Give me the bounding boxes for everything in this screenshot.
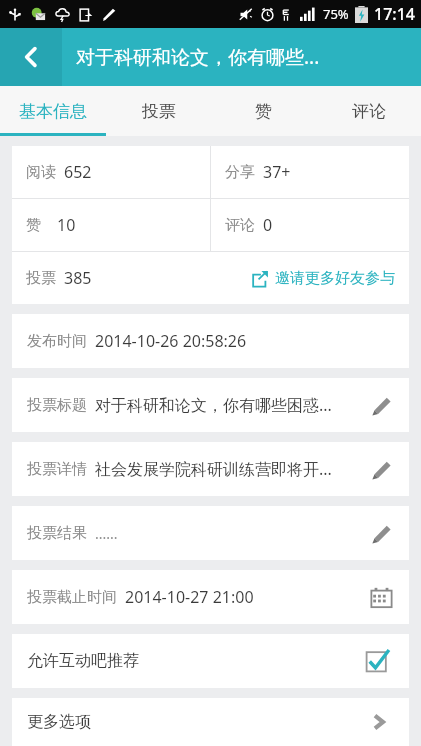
staticText: 投票 xyxy=(26,269,56,288)
staticText: 邀请更多好友参与 xyxy=(275,269,395,288)
staticText: 评论 xyxy=(352,101,386,122)
button[interactable]: 阅读 xyxy=(12,146,210,198)
staticText: 基本信息 xyxy=(19,101,87,122)
button[interactable]: 更多选项 xyxy=(13,699,408,745)
staticText: 更多选项 xyxy=(27,712,91,732)
button[interactable]: Pick date xyxy=(366,582,396,612)
button[interactable]: 投票 xyxy=(106,86,211,136)
staticText: 评论 xyxy=(225,216,255,235)
button[interactable]: Allow recommendation xyxy=(360,644,394,678)
staticText: 652 xyxy=(64,161,92,183)
button[interactable]: More options xyxy=(364,707,394,737)
staticText: 阅读 xyxy=(26,163,56,182)
staticText: 投票详情 xyxy=(27,460,87,479)
staticText: 75% xyxy=(323,5,349,23)
staticText: 0 xyxy=(263,214,273,236)
staticText: 对于科研和论文，你有哪些... xyxy=(76,44,320,70)
button[interactable]: 投票标题 xyxy=(13,379,408,431)
button[interactable]: Back xyxy=(0,28,62,86)
button[interactable]: 评论 xyxy=(211,199,409,251)
staticText: 投票截止时间 xyxy=(27,588,117,607)
staticText: 10 xyxy=(57,214,76,236)
button[interactable]: Edit xyxy=(366,390,396,420)
button[interactable]: 发布时间 xyxy=(13,315,408,367)
button[interactable]: 邀请更多好友参与 xyxy=(251,269,395,288)
button[interactable]: 投票截止时间 xyxy=(13,571,408,623)
button[interactable]: 赞 xyxy=(12,199,210,251)
staticText: 投票标题 xyxy=(27,396,87,415)
staticText: 分享 xyxy=(225,163,255,182)
staticText: 赞 xyxy=(255,101,272,122)
staticText: 投票结果 xyxy=(27,524,87,543)
staticText: 17:14 xyxy=(374,3,415,25)
staticText: 赞 xyxy=(26,216,41,235)
staticText: 2014-10-26 20:58:26 xyxy=(95,330,247,352)
staticText: 投票 xyxy=(142,101,176,122)
button[interactable]: 分享 xyxy=(211,146,409,198)
staticText: 允许互动吧推荐 xyxy=(27,651,139,671)
button[interactable]: 赞 xyxy=(211,86,316,136)
button[interactable]: 允许互动吧推荐 xyxy=(13,635,408,687)
staticText: 社会发展学院科研训练营即将开... xyxy=(95,458,332,480)
button[interactable]: 投票结果 xyxy=(13,507,408,559)
staticText: 385 xyxy=(64,267,92,289)
button[interactable]: 投票详情 xyxy=(13,443,408,495)
button[interactable]: Edit xyxy=(366,518,396,548)
staticText: 2014-10-27 21:00 xyxy=(125,586,254,608)
staticText: 对于科研和论文，你有哪些困惑... xyxy=(95,394,332,416)
staticText: ...... xyxy=(95,524,118,543)
button[interactable]: 评论 xyxy=(316,86,421,136)
staticText: 37+ xyxy=(263,161,291,183)
staticText: 发布时间 xyxy=(27,332,87,351)
button[interactable]: 基本信息 xyxy=(0,86,106,136)
button[interactable]: Edit xyxy=(366,454,396,484)
